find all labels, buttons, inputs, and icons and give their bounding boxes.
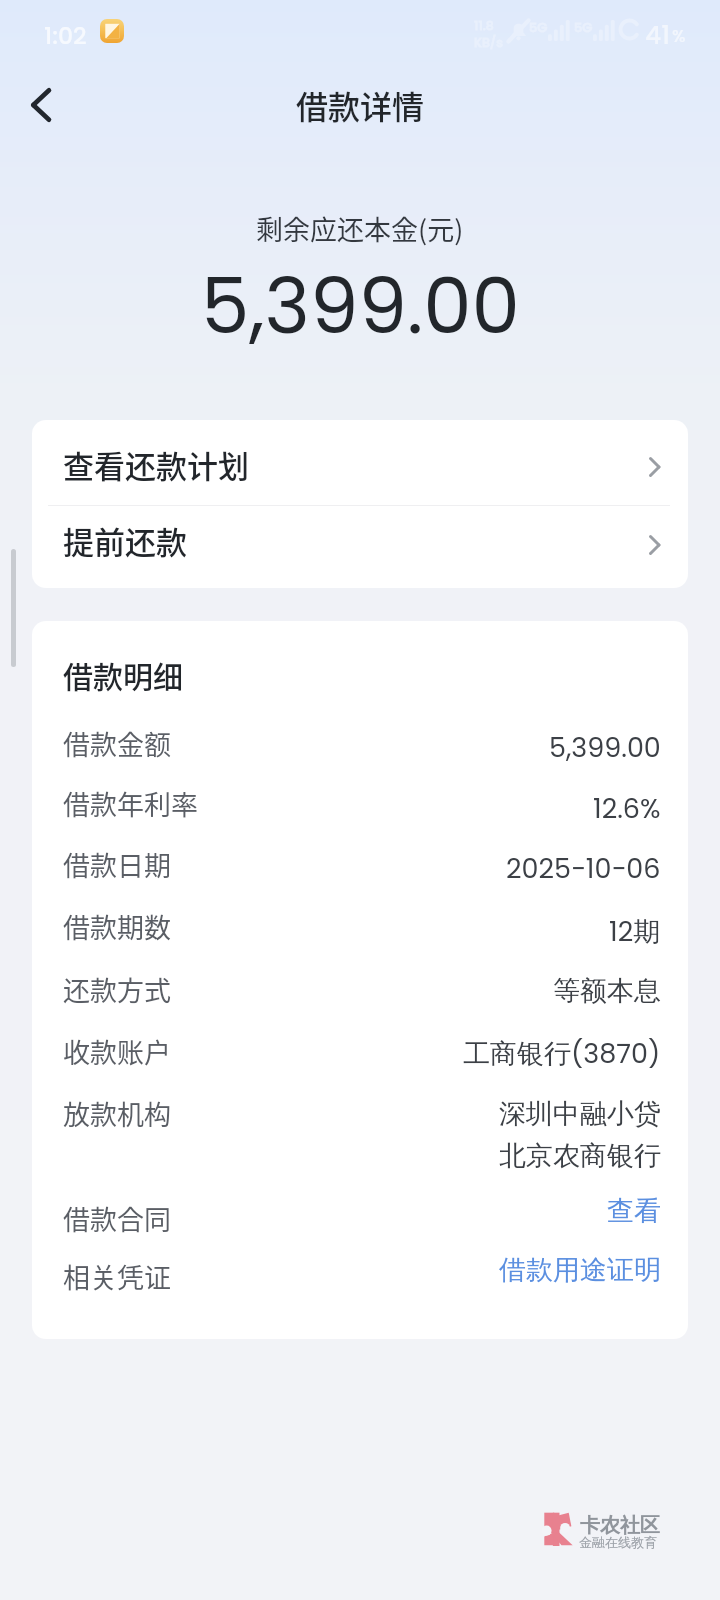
staticText: 金融在线教育 xyxy=(579,1534,657,1550)
staticText: 卡农社区 xyxy=(580,1513,660,1538)
staticText: 等额本息 xyxy=(553,974,661,1008)
staticText: 5,399.00 xyxy=(549,729,661,767)
staticText: 41 xyxy=(645,18,670,53)
staticText: 工商银行(3870) xyxy=(463,1035,661,1073)
button[interactable]: 提前还款 xyxy=(32,505,688,588)
staticText: 提前还款 xyxy=(63,518,187,563)
staticText: 借款年利率 xyxy=(63,784,198,823)
staticText: 还款方式 xyxy=(63,970,171,1009)
staticText: 借款期数 xyxy=(63,907,171,946)
staticText: 剩余应还本金(元) xyxy=(256,209,464,248)
staticText: 借款详情 xyxy=(296,82,425,128)
staticText: 12.6% xyxy=(593,790,661,828)
staticText: 5,399.00 xyxy=(201,252,520,360)
staticText: % xyxy=(672,24,686,48)
button[interactable]: 查看还款计划 xyxy=(32,420,688,505)
staticText: 借款明细 xyxy=(63,653,183,696)
staticText: 借款用途证明 xyxy=(499,1253,661,1287)
staticText: 借款金额 xyxy=(63,724,171,763)
staticText: 5G xyxy=(574,18,593,36)
staticText: 收款账户 xyxy=(63,1032,171,1071)
staticText: 12期 xyxy=(609,913,661,951)
staticText: 查看还款计划 xyxy=(63,442,249,487)
staticText: 深圳中融小贷 xyxy=(499,1097,661,1131)
staticText: 5G xyxy=(529,18,548,36)
staticText: 1:02 xyxy=(44,19,87,52)
staticText: 借款合同 xyxy=(63,1199,171,1238)
staticText: KB/s xyxy=(474,34,503,51)
button[interactable]: Back xyxy=(8,72,72,136)
staticText: 相关凭证 xyxy=(63,1257,171,1296)
staticText: 放款机构 xyxy=(63,1094,171,1133)
staticText: 借款日期 xyxy=(63,845,171,884)
staticText: 北京农商银行 xyxy=(499,1139,661,1173)
staticText: 11.8 xyxy=(474,17,494,34)
staticText: 查看 xyxy=(607,1194,661,1228)
staticText: 2025−10−06 xyxy=(506,850,661,888)
